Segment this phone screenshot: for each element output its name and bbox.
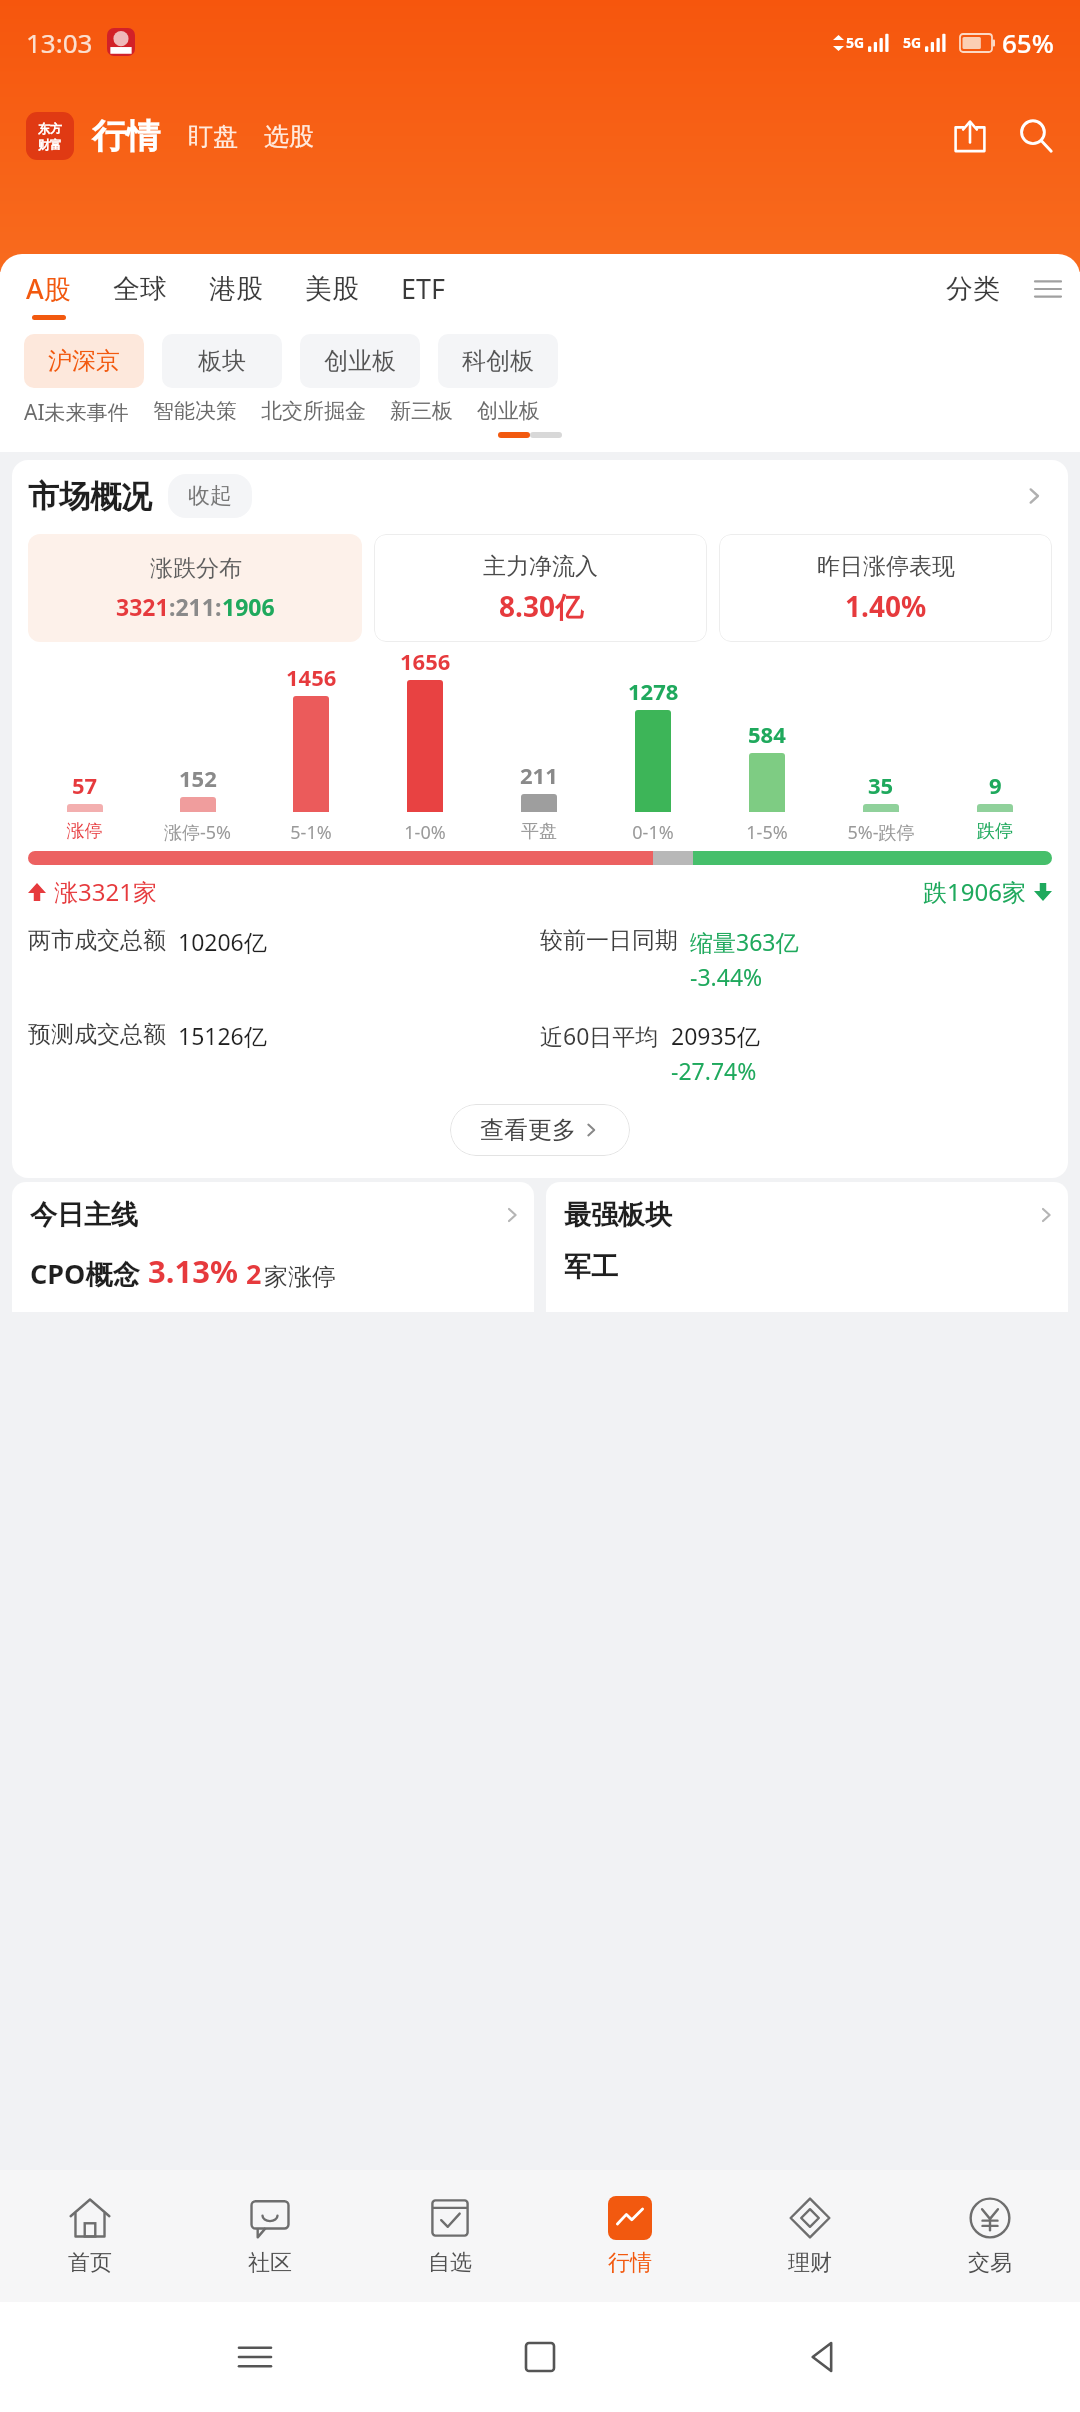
staticText: 1906 xyxy=(222,591,275,622)
button[interactable]: 科创板 xyxy=(438,334,558,388)
button[interactable]: 新三板 xyxy=(390,398,453,422)
staticText: 涨跌分布 xyxy=(150,554,242,583)
staticText: ETF xyxy=(401,270,446,307)
button[interactable]: 创业板 xyxy=(300,334,420,388)
staticText: 152 xyxy=(179,763,217,793)
button[interactable]: East Money xyxy=(26,112,74,160)
staticText: 涨3321家 xyxy=(54,875,157,908)
staticText: 1656 xyxy=(400,646,451,676)
staticText: 涨停-5% xyxy=(141,820,254,845)
staticText: 自选 xyxy=(428,2249,472,2277)
staticText: 211 xyxy=(520,760,558,790)
staticText: 较前一日同期 xyxy=(540,926,678,955)
staticText: 跌1906家 xyxy=(923,875,1026,908)
staticText: 1.40% xyxy=(845,587,927,625)
button[interactable]: 盯盘 xyxy=(186,121,240,152)
staticText: 沪深京 xyxy=(48,346,120,376)
button[interactable]: 最强板块 xyxy=(546,1182,1068,1312)
button[interactable]: 今日主线 xyxy=(12,1182,534,1312)
staticText: 5G xyxy=(846,33,865,52)
button[interactable]: 自选 xyxy=(360,2170,540,2302)
staticText: 市场概况 xyxy=(28,477,152,516)
staticText: 选股 xyxy=(264,121,314,152)
staticText: 跌停 xyxy=(938,820,1052,843)
staticText: 新三板 xyxy=(390,398,453,422)
button[interactable]: 首页 xyxy=(0,2170,180,2302)
staticText: 港股 xyxy=(209,272,263,306)
staticText: :211: xyxy=(169,591,222,622)
button[interactable]: Share xyxy=(946,112,994,160)
button[interactable]: AI未来事件 xyxy=(24,398,129,422)
button[interactable]: A股 xyxy=(26,270,71,320)
staticText: 收起 xyxy=(188,482,232,510)
button[interactable]: 行情 xyxy=(540,2170,720,2302)
button[interactable]: 理财 xyxy=(720,2170,900,2302)
staticText: 57 xyxy=(72,770,98,800)
staticText: 8.30亿 xyxy=(499,587,583,625)
button[interactable]: Home xyxy=(510,2327,570,2387)
button[interactable]: 收起 xyxy=(168,474,252,518)
staticText: 两市成交总额 xyxy=(28,926,166,955)
button[interactable]: 智能决策 xyxy=(153,398,237,422)
staticText: 5-1% xyxy=(254,820,368,845)
button[interactable]: ETF xyxy=(401,270,446,320)
button[interactable]: 美股 xyxy=(305,272,359,319)
staticText: 首页 xyxy=(68,2249,112,2277)
staticText: 35 xyxy=(868,770,894,800)
button[interactable]: Menu xyxy=(1030,271,1066,307)
staticText: 3321 xyxy=(116,591,169,622)
staticText: 全球 xyxy=(113,272,167,306)
staticText: 涨停 xyxy=(28,820,141,843)
button[interactable]: More xyxy=(1016,478,1052,514)
button[interactable]: 全球 xyxy=(113,272,167,319)
staticText: 3.13% xyxy=(148,1250,238,1292)
button[interactable]: 昨日涨停表现 xyxy=(719,534,1052,642)
staticText: 板块 xyxy=(198,346,246,376)
staticText: 创业板 xyxy=(477,398,540,422)
button[interactable]: 沪深京 xyxy=(24,334,144,388)
staticText: 科创板 xyxy=(462,346,534,376)
staticText: 军工 xyxy=(564,1250,618,1284)
button[interactable]: 涨跌分布 xyxy=(28,534,362,642)
button[interactable]: Back xyxy=(795,2327,855,2387)
button[interactable]: 交易 xyxy=(900,2170,1080,2302)
button[interactable]: Search xyxy=(1012,112,1060,160)
staticText: 5G xyxy=(903,33,922,52)
staticText: 2 xyxy=(246,1255,262,1292)
button[interactable]: 板块 xyxy=(162,334,282,388)
button[interactable]: 选股 xyxy=(262,121,316,152)
staticText: 9 xyxy=(989,770,1002,800)
button[interactable]: 分类 xyxy=(936,272,1010,306)
staticText: 584 xyxy=(748,719,786,749)
staticText: 东方 xyxy=(38,121,62,136)
button[interactable]: 社区 xyxy=(180,2170,360,2302)
staticText: CPO概念 xyxy=(30,1255,140,1292)
staticText: 0-1% xyxy=(596,820,710,845)
staticText: 1456 xyxy=(286,662,337,692)
staticText: 交易 xyxy=(968,2249,1012,2277)
button[interactable]: Recents xyxy=(225,2327,285,2387)
button[interactable]: 港股 xyxy=(209,272,263,319)
staticText: 社区 xyxy=(248,2249,292,2277)
staticText: 5%-跌停 xyxy=(824,820,938,845)
staticText: 20935亿 xyxy=(671,1020,760,1051)
staticText: AI未来事件 xyxy=(24,398,129,422)
staticText: 查看更多 xyxy=(480,1115,576,1145)
button[interactable]: 查看更多 xyxy=(450,1104,630,1156)
button[interactable]: 主力净流入 xyxy=(374,534,707,642)
staticText: 1278 xyxy=(628,676,679,706)
staticText: 平盘 xyxy=(482,820,596,843)
staticText: 今日主线 xyxy=(30,1198,138,1232)
staticText: 主力净流入 xyxy=(483,552,598,581)
button[interactable]: 北交所掘金 xyxy=(261,398,366,422)
staticText: 家涨停 xyxy=(264,1262,336,1292)
staticText: 1-5% xyxy=(710,820,824,845)
staticText: A股 xyxy=(26,270,71,307)
staticText: 最强板块 xyxy=(564,1198,672,1232)
staticText: 15126亿 xyxy=(178,1020,267,1051)
staticText: 65% xyxy=(1002,25,1054,60)
button[interactable]: 创业板 xyxy=(477,398,540,422)
staticText: 财富 xyxy=(38,137,62,152)
staticText: -27.74% xyxy=(671,1055,757,1086)
button[interactable]: 行情 xyxy=(90,115,162,158)
